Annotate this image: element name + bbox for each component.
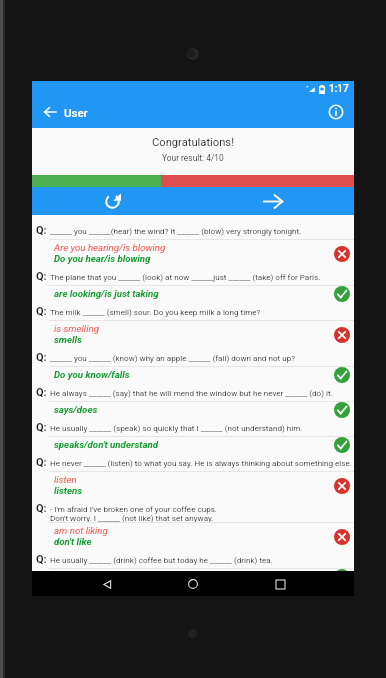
staticText: says/does bbox=[54, 404, 98, 415]
staticText: Your result: 4/10 bbox=[162, 153, 224, 163]
staticText: Q: bbox=[36, 553, 47, 566]
staticText: are looking/is just taking bbox=[54, 288, 159, 299]
staticText: Q: bbox=[36, 421, 47, 434]
button[interactable]: Q: bbox=[32, 553, 354, 588]
staticText: He never ______ (listen) to what you say… bbox=[50, 458, 352, 467]
staticText: He usually ______ (drink) coffee but tod… bbox=[50, 555, 273, 564]
button[interactable]: Q: bbox=[32, 224, 354, 270]
button[interactable]: Q: bbox=[32, 421, 354, 456]
staticText: He usually ______ (speak) so quickly tha… bbox=[50, 423, 303, 432]
staticText: Do you know/falls bbox=[54, 369, 130, 380]
button[interactable]: Q: bbox=[32, 456, 354, 502]
staticText: The milk ______ (smell) sour. Do you kee… bbox=[50, 307, 261, 316]
button[interactable]: Home bbox=[181, 572, 205, 596]
staticText: Q: bbox=[36, 386, 47, 399]
staticText: He always ______ (say) that he will mend… bbox=[50, 388, 333, 397]
button[interactable]: Q: bbox=[32, 270, 354, 305]
staticText: Congratulations! bbox=[152, 136, 235, 149]
button[interactable]: Back bbox=[95, 572, 119, 596]
staticText: smells bbox=[54, 334, 82, 345]
button[interactable]: Q: bbox=[32, 502, 354, 553]
staticText: am not liking bbox=[54, 525, 108, 536]
button[interactable]: Q: bbox=[32, 351, 354, 386]
staticText: Q: bbox=[36, 351, 47, 364]
staticText: Q: bbox=[36, 270, 47, 283]
staticText: listen bbox=[54, 474, 77, 485]
staticText: listens bbox=[54, 485, 83, 496]
staticText: User bbox=[64, 106, 88, 119]
staticText: speaks/don't understand bbox=[54, 439, 158, 450]
staticText: ______ you ______ (know) why an apple __… bbox=[50, 353, 295, 362]
button[interactable]: Q: bbox=[32, 386, 354, 421]
staticText: The plane that you ______ (look) at now … bbox=[50, 272, 321, 281]
staticText: Q: bbox=[36, 456, 47, 469]
staticText: is smelling bbox=[54, 323, 99, 334]
button[interactable]: Next bbox=[193, 187, 354, 215]
staticText: drinks/drinks bbox=[54, 571, 110, 582]
staticText: - I'm afraid I've broken one of your cof… bbox=[50, 504, 217, 513]
button[interactable]: Restart quiz bbox=[32, 187, 193, 215]
button[interactable]: Back bbox=[37, 99, 63, 125]
staticText: ______ you ______(hear) the wind? It ___… bbox=[50, 226, 302, 235]
button[interactable]: Q: bbox=[32, 305, 354, 351]
staticText: Q: bbox=[36, 305, 47, 318]
staticText: Don't worry. I ______ (not like) that se… bbox=[50, 513, 214, 522]
staticText: Do you hear/is blowing bbox=[54, 253, 151, 264]
button[interactable]: Recent apps bbox=[268, 572, 292, 596]
staticText: 1:17 bbox=[329, 83, 349, 95]
button[interactable]: Info bbox=[323, 99, 349, 125]
staticText: Are you hearing/is blowing bbox=[54, 242, 166, 253]
staticText: Q: bbox=[36, 224, 47, 237]
staticText: Q: bbox=[36, 502, 47, 515]
staticText: don't like bbox=[54, 536, 92, 547]
